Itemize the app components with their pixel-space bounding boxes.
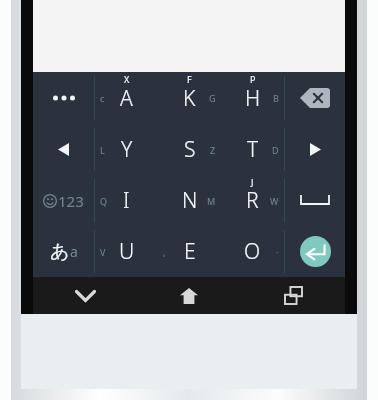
staticText: N xyxy=(182,186,198,215)
button[interactable]: P xyxy=(221,72,284,124)
staticText: Z xyxy=(210,144,216,156)
staticText: A xyxy=(120,84,133,113)
button[interactable]: Cursor left xyxy=(33,124,94,175)
staticText: · xyxy=(276,246,279,258)
staticText: 123 xyxy=(58,191,84,211)
button[interactable]: あ xyxy=(33,226,94,277)
staticText: a xyxy=(70,242,78,261)
staticText: U xyxy=(119,237,135,266)
button[interactable]: O xyxy=(221,226,284,277)
staticText: R xyxy=(246,186,259,215)
staticText: H xyxy=(245,84,261,113)
staticText: J xyxy=(251,176,254,188)
button[interactable]: Space xyxy=(285,175,345,226)
staticText: S xyxy=(184,135,196,164)
staticText: Y xyxy=(121,135,133,164)
staticText: X xyxy=(124,73,130,85)
button[interactable]: S xyxy=(158,124,221,175)
staticText: F xyxy=(187,73,192,85)
button[interactable]: I xyxy=(95,175,158,226)
staticText: P xyxy=(250,73,256,85)
button[interactable]: Enter xyxy=(285,226,345,277)
button[interactable]: More symbols xyxy=(33,72,94,124)
button[interactable]: Cursor right xyxy=(285,124,345,175)
staticText: I xyxy=(123,186,130,215)
button[interactable]: 123 xyxy=(33,175,94,226)
button[interactable]: N xyxy=(158,175,221,226)
staticText: , xyxy=(163,246,166,258)
staticText: D xyxy=(272,144,279,156)
button[interactable]: U xyxy=(95,226,158,277)
staticText: c xyxy=(100,92,105,104)
staticText: T xyxy=(247,135,259,164)
button[interactable]: Delete xyxy=(285,72,345,124)
button[interactable]: T xyxy=(221,124,284,175)
button[interactable]: E xyxy=(158,226,221,277)
button[interactable]: X xyxy=(95,72,158,124)
staticText: W xyxy=(270,195,279,207)
button[interactable]: Home xyxy=(137,277,241,314)
button[interactable]: Y xyxy=(95,124,158,175)
staticText: L xyxy=(100,144,105,156)
button[interactable]: F xyxy=(158,72,221,124)
staticText: V xyxy=(100,246,106,258)
button[interactable]: J xyxy=(221,175,284,226)
staticText: B xyxy=(273,92,279,104)
staticText: E xyxy=(184,237,196,266)
staticText: Q xyxy=(100,195,108,207)
staticText: G xyxy=(209,92,216,104)
staticText: K xyxy=(183,84,196,113)
button[interactable]: Recent apps xyxy=(241,277,345,314)
button[interactable]: Hide keyboard xyxy=(33,277,137,314)
staticText: あ xyxy=(50,240,70,264)
staticText: M xyxy=(207,195,216,207)
staticText: O xyxy=(244,237,261,266)
